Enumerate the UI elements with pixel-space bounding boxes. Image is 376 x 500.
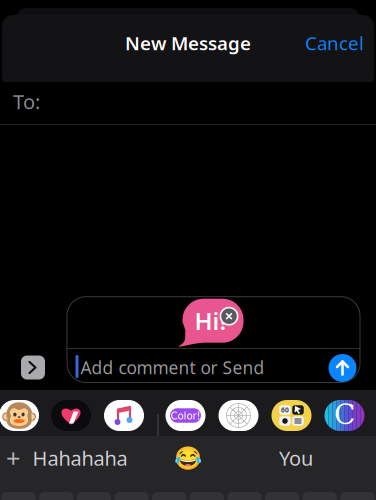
- button[interactable]: App Store: [271, 400, 311, 431]
- staticText: 60: [281, 406, 289, 414]
- staticText: Add comment or Send: [80, 356, 264, 379]
- staticText: +: [6, 441, 20, 475]
- button[interactable]: Digital Touch: [51, 400, 91, 431]
- staticText: New Message: [125, 31, 251, 55]
- staticText: Cancel: [305, 31, 364, 55]
- button[interactable]: Sketch: [218, 400, 258, 431]
- button[interactable]: Hahahaha: [26, 438, 134, 478]
- button[interactable]: Music: [104, 400, 144, 431]
- button[interactable]: Add: [0, 438, 26, 478]
- button[interactable]: Show apps: [21, 355, 45, 379]
- button[interactable]: 😂: [134, 438, 242, 478]
- button[interactable]: Canva: [324, 400, 364, 431]
- button[interactable]: Color: [165, 400, 205, 431]
- staticText: You: [279, 445, 313, 471]
- staticText: Hi!: [194, 305, 226, 337]
- staticText: 🐵: [0, 398, 38, 433]
- staticText: C: [334, 398, 355, 431]
- button[interactable]: Send: [328, 354, 356, 382]
- staticText: Hahahaha: [32, 445, 127, 471]
- staticText: 😂: [174, 445, 202, 471]
- button[interactable]: Memoji: [0, 400, 39, 431]
- button[interactable]: Cancel: [293, 23, 376, 63]
- staticText: To:: [13, 88, 40, 115]
- staticText: Color!: [170, 409, 200, 422]
- button[interactable]: You: [242, 438, 350, 478]
